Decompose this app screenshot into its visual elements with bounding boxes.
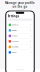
staticText: Manage your profile [5, 1, 35, 5]
staticText: Payment [12, 46, 18, 48]
staticText: General [12, 24, 18, 26]
button[interactable]: Payment [7, 44, 33, 49]
button[interactable]: Display [7, 28, 33, 33]
button[interactable]: Privacy [7, 33, 33, 38]
staticText: Account [12, 40, 18, 42]
button[interactable]: General [7, 22, 33, 27]
button[interactable]: Account [7, 39, 33, 44]
staticText: Privacy [12, 35, 18, 37]
button[interactable]: About [7, 50, 33, 55]
staticText: Version 1.0 [16, 69, 24, 71]
staticText: About [12, 51, 16, 53]
staticText: on the go [12, 5, 27, 9]
staticText: Settings [8, 14, 19, 18]
staticText: Display [12, 29, 17, 31]
